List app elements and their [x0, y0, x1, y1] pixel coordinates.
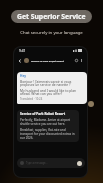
staticText: Perfectly, Madame. Arrive at airport shu…	[20, 118, 76, 126]
staticText: Breakfast, supplies, flat-rate and trans…	[20, 128, 76, 140]
staticText: Translated · 10:24	[20, 97, 43, 101]
staticText: Service of Park Robot Resort	[31, 59, 65, 62]
staticText: Bonjour ! J'aimerais savoir si vous prop…	[20, 79, 84, 87]
staticText: My husband and I would like to plan ahea…	[20, 88, 84, 96]
button[interactable]: Call	[74, 58, 79, 63]
staticText: 9:41	[19, 49, 26, 53]
staticText: Service of Park Robot Resort	[20, 112, 66, 116]
button[interactable]: More options	[79, 58, 84, 63]
button[interactable]: Back	[17, 58, 22, 63]
button[interactable]: Profile	[88, 101, 94, 107]
staticText: Type a message...	[26, 161, 48, 165]
staticText: Hey	[20, 74, 27, 78]
button[interactable]: Send	[77, 161, 82, 166]
button[interactable]: Get Superior Service	[11, 10, 92, 23]
staticText: Chat securely in your language	[20, 29, 83, 35]
button[interactable]: Type a message...	[17, 158, 85, 168]
staticText: Get Superior Service	[17, 12, 86, 21]
